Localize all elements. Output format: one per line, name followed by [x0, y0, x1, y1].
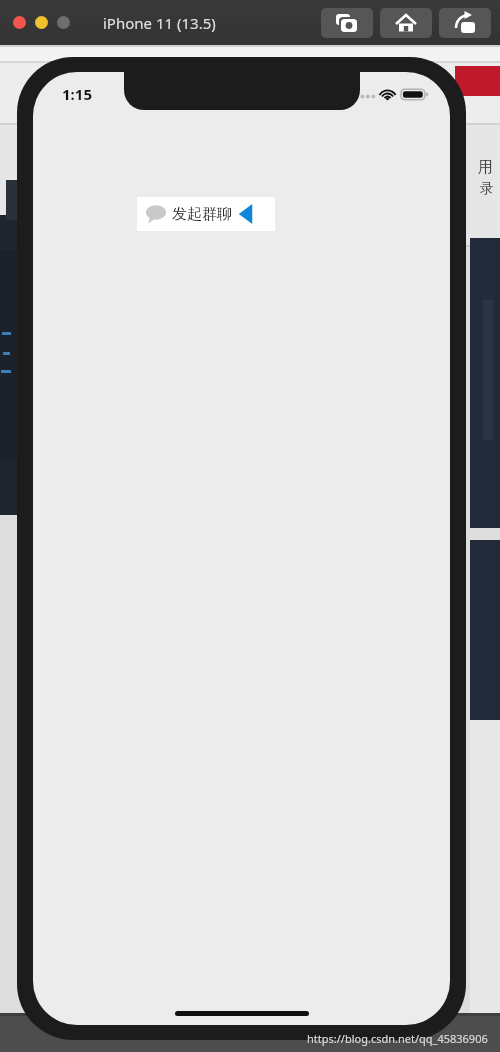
staticText: 用 — [478, 158, 493, 177]
staticText: 1:15 — [62, 84, 92, 104]
button[interactable]: Home — [380, 8, 432, 38]
staticText: 发起群聊 — [172, 205, 232, 224]
button[interactable]: Share — [439, 8, 491, 38]
staticText: https://blog.csdn.net/qq_45836906 — [307, 1031, 488, 1046]
button[interactable]: Minimise — [35, 16, 48, 29]
staticText: iPhone 11 (13.5) — [103, 13, 216, 33]
button[interactable]: Screenshot — [321, 8, 373, 38]
staticText: 录 — [480, 180, 494, 198]
button[interactable]: Close — [13, 16, 26, 29]
button[interactable]: 发起群聊 — [137, 197, 275, 231]
button[interactable]: Zoom — [57, 16, 70, 29]
